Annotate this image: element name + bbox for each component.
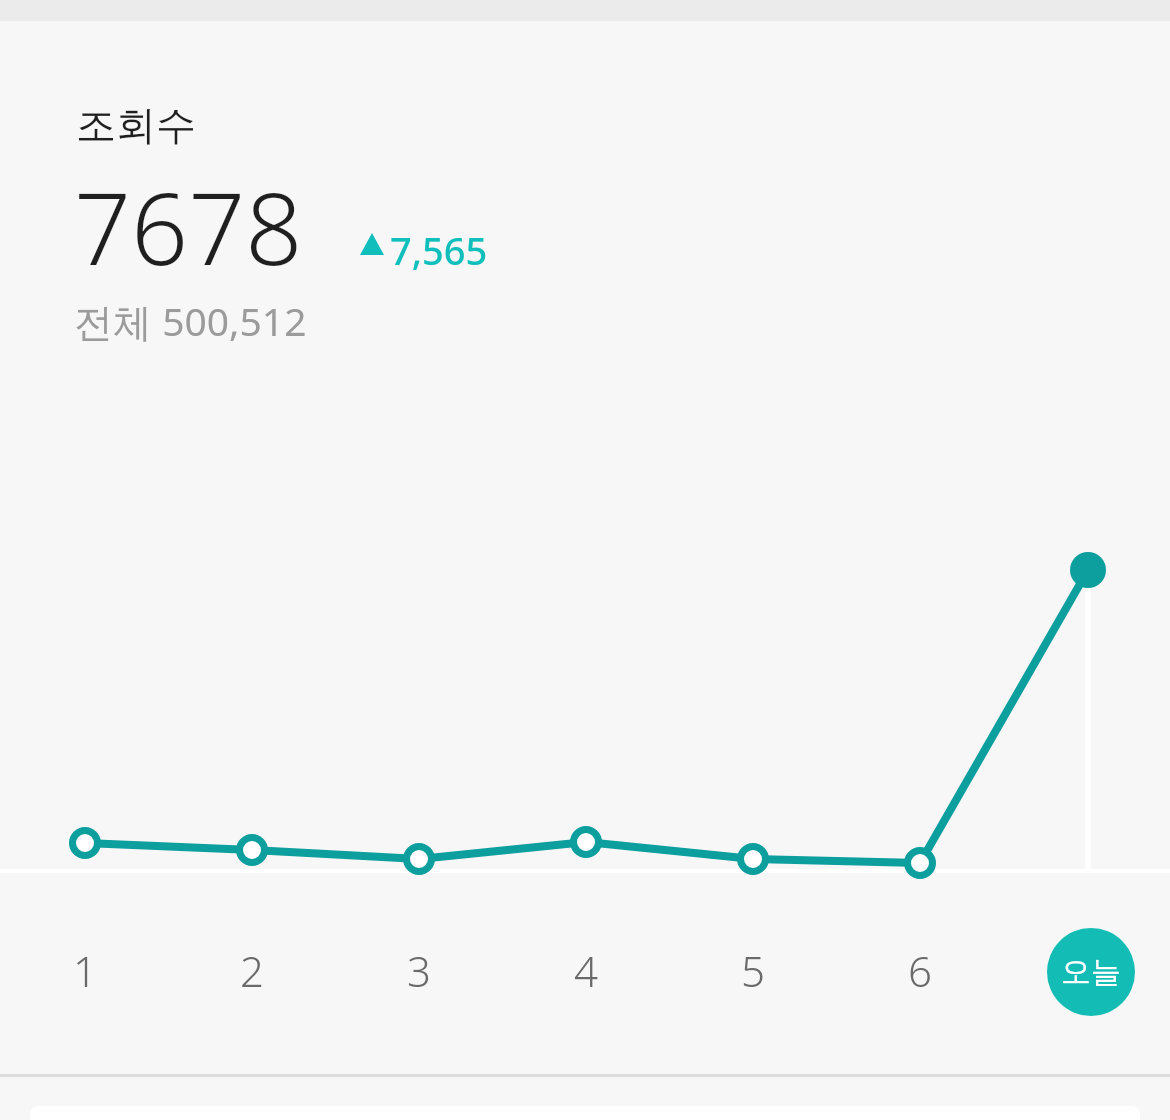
staticText: 오늘	[1061, 953, 1121, 991]
staticText: 5	[741, 942, 765, 999]
staticText: 3	[407, 942, 431, 999]
staticText: 2	[240, 942, 264, 999]
button[interactable]: 오늘	[1047, 928, 1135, 1016]
staticText: 7,565	[390, 224, 488, 276]
staticText: 4	[574, 942, 598, 999]
staticText: 1	[73, 942, 97, 999]
staticText: 조회수	[76, 100, 196, 150]
staticText: 전체 500,512	[74, 294, 307, 347]
staticText: 6	[908, 942, 932, 999]
staticText: 7678	[74, 158, 303, 294]
